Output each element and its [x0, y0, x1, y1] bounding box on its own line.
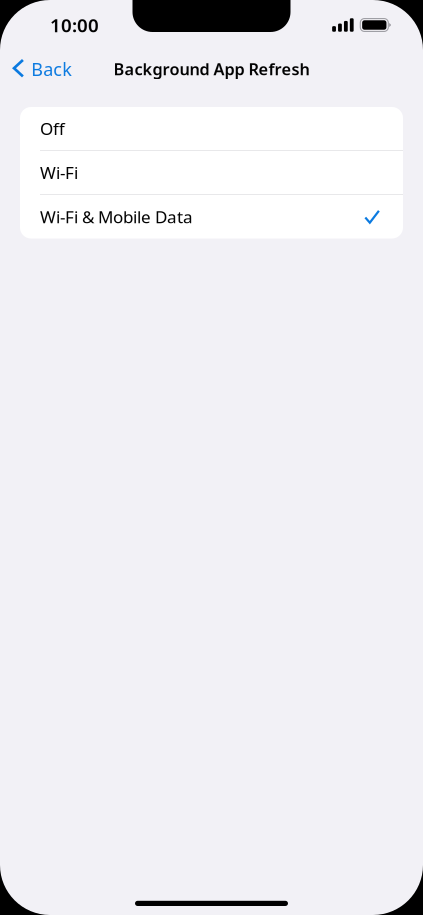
staticText: Off [40, 117, 65, 140]
button[interactable]: Off [20, 107, 403, 150]
button[interactable]: Back [0, 50, 84, 88]
staticText: Wi-Fi & Mobile Data [40, 205, 193, 228]
staticText: Wi-Fi [40, 161, 78, 184]
staticText: Back [31, 57, 72, 81]
button[interactable]: Wi-Fi [20, 151, 403, 194]
staticText: 10:00 [50, 12, 99, 38]
button[interactable]: Wi-Fi & Mobile Data [20, 195, 403, 238]
staticText: Background App Refresh [113, 58, 309, 80]
